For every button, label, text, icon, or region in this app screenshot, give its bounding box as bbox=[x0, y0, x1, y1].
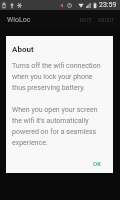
staticText: RATE bbox=[80, 17, 92, 23]
staticText: WioLoc bbox=[7, 16, 31, 24]
button[interactable]: RATE bbox=[77, 13, 95, 27]
staticText: About bbox=[12, 45, 34, 54]
staticText: Turns off the wifi connection when you l… bbox=[12, 62, 105, 147]
button[interactable]: ABOUT bbox=[95, 13, 120, 27]
staticText: OK bbox=[93, 160, 101, 167]
staticText: 23:59 bbox=[99, 1, 117, 9]
staticText: ABOUT bbox=[98, 17, 115, 23]
button[interactable]: OK bbox=[83, 156, 113, 173]
